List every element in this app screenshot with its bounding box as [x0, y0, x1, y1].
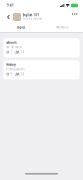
button[interactable]: Members — [41, 23, 83, 32]
staticText: 14 — [21, 50, 25, 54]
staticText: English 101 — [23, 13, 40, 17]
staticText: Members — [56, 26, 68, 29]
staticText: online course — [23, 17, 43, 20]
staticText: 9 — [10, 72, 12, 76]
button[interactable]: Back — [4, 12, 13, 22]
staticText: 3 — [10, 50, 12, 54]
button[interactable]: Topics — [0, 23, 41, 32]
staticText: 14 — [21, 72, 25, 76]
button[interactable]: History — [3, 60, 79, 79]
staticText: schools — [6, 41, 16, 44]
staticText: history words — [6, 67, 24, 71]
button[interactable]: schools — [3, 38, 79, 57]
staticText: we all went — [6, 45, 22, 49]
staticText: 9:41 — [7, 4, 14, 7]
staticText: Topics — [17, 26, 25, 29]
staticText: History — [6, 63, 15, 66]
button[interactable]: More options — [72, 12, 77, 22]
